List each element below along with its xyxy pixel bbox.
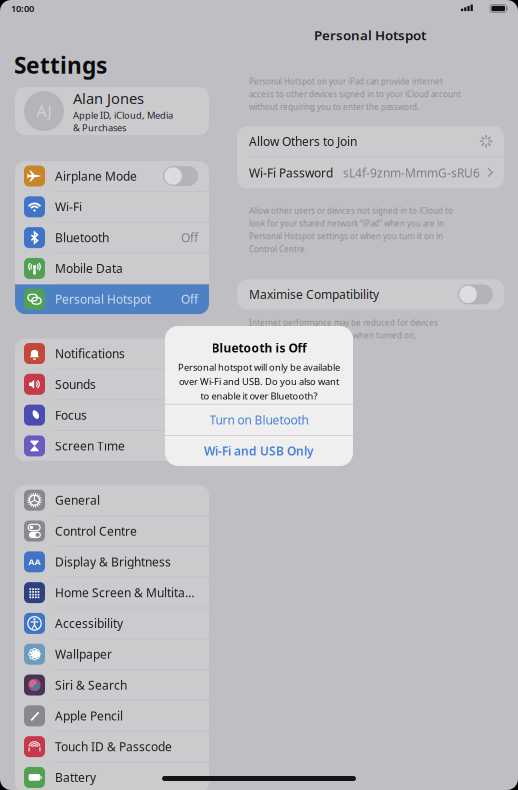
staticText: Wi-Fi Password — [249, 165, 333, 181]
staticText: Touch ID & Passcode — [55, 739, 172, 754]
staticText: without requiring you to enter the passw… — [249, 102, 419, 112]
button[interactable]: Bluetooth — [15, 223, 209, 252]
staticText: Control Centre. — [249, 244, 307, 254]
staticText: Focus — [55, 407, 87, 423]
staticText: Home Screen & Multitas… — [55, 585, 198, 600]
staticText: AA — [26, 554, 42, 570]
staticText: Wallpaper — [55, 646, 112, 662]
button[interactable]: Maximise Compatibility — [237, 279, 504, 309]
staticText: Apple Pencil — [55, 708, 123, 724]
staticText: Battery — [55, 769, 96, 785]
staticText: connected to your hotspot when turned on… — [249, 330, 416, 341]
button[interactable]: Turn on Bluetooth — [165, 405, 353, 435]
staticText: Wi-Fi — [55, 199, 82, 215]
staticText: Turn on Bluetooth — [209, 412, 308, 428]
button[interactable]: Wi-Fi — [15, 192, 209, 222]
button[interactable]: Sounds — [15, 369, 209, 399]
button[interactable]: Touch ID & Passcode — [15, 732, 209, 761]
button[interactable]: Control Centre — [15, 516, 209, 546]
staticText: Display & Brightness — [55, 554, 171, 570]
staticText: to enable it over Bluetooth? — [200, 390, 317, 402]
button[interactable]: Focus — [15, 400, 209, 430]
button[interactable]: General — [15, 485, 209, 515]
staticText: Alan Jones — [73, 88, 144, 108]
staticText: look for your shared network “iPad” when… — [249, 218, 444, 229]
staticText: Control Centre — [55, 523, 137, 539]
staticText: Bluetooth is Off — [211, 340, 306, 356]
staticText: over Wi-Fi and USB. Do you also want — [179, 375, 339, 388]
button[interactable]: Screen Time — [15, 431, 209, 461]
staticText: Wi-Fi and USB Only — [204, 443, 314, 459]
staticText: Allow other users or devices not signed … — [249, 205, 453, 216]
staticText: Apple ID, iCloud, Media — [73, 109, 173, 121]
staticText: Bluetooth — [55, 230, 109, 245]
button[interactable]: Airplane Mode — [15, 161, 209, 191]
button[interactable]: AJ — [15, 87, 209, 135]
button[interactable]: Battery — [15, 762, 209, 790]
button[interactable]: Personal Hotspot — [15, 284, 209, 314]
staticText: Accessibility — [55, 615, 123, 631]
staticText: Screen Time — [55, 438, 125, 454]
button[interactable]: Siri & Search — [15, 670, 209, 700]
button[interactable]: Home Screen & Multitas… — [15, 578, 209, 607]
staticText: Notifications — [55, 345, 125, 361]
staticText: Sounds — [55, 376, 96, 392]
staticText: Maximise Compatibility — [249, 286, 379, 302]
staticText: & Purchases — [73, 121, 126, 134]
staticText: Siri & Search — [55, 677, 127, 693]
button[interactable]: Mobile Data — [15, 253, 209, 283]
staticText: Settings — [14, 50, 107, 80]
button[interactable]: Apple Pencil — [15, 701, 209, 731]
staticText: Personal Hotspot — [314, 26, 426, 44]
staticText: Internet performance may be reduced for … — [249, 317, 438, 328]
button[interactable]: Wi-Fi Password — [237, 157, 504, 188]
button[interactable]: Wallpaper — [15, 639, 209, 669]
button[interactable]: Notifications — [15, 339, 209, 368]
button[interactable]: Wi-Fi and USB Only — [165, 436, 353, 466]
button[interactable]: Accessibility — [15, 608, 209, 638]
staticText: Personal hotspot will only be available — [178, 361, 340, 373]
button[interactable]: AA — [15, 547, 209, 577]
staticText: Personal Hotspot — [55, 291, 151, 307]
staticText: General — [55, 492, 100, 508]
staticText: sL4f-9znm-MmmG-sRU6 — [343, 165, 480, 181]
staticText: access to other devices signed in to you… — [249, 89, 461, 99]
staticText: Allow Others to Join — [249, 133, 357, 149]
staticText: Personal Hotspot settings or when you tu… — [249, 231, 443, 241]
staticText: AJ — [36, 100, 51, 122]
button[interactable]: Allow Others to Join — [237, 126, 504, 156]
staticText: Mobile Data — [55, 260, 123, 276]
staticText: Airplane Mode — [55, 168, 137, 184]
staticText: 10:00 — [11, 2, 34, 15]
staticText: Off — [181, 230, 198, 245]
staticText: Off — [181, 291, 198, 307]
staticText: Personal Hotspot on your iPad can provid… — [249, 76, 443, 87]
